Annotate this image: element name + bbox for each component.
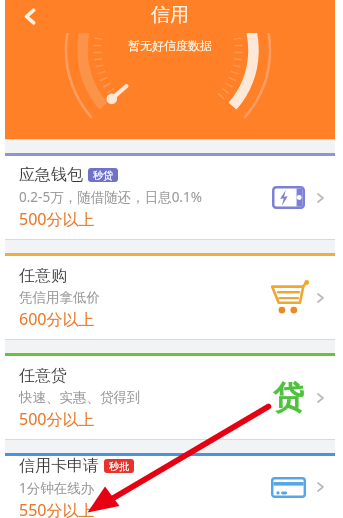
staticText: 500分以上 <box>19 408 95 430</box>
staticText: 秒批 <box>109 460 129 473</box>
staticText: 秒贷 <box>93 169 113 182</box>
staticText: 暂无好信度数据 <box>128 38 212 53</box>
staticText: 500分以上 <box>19 208 95 230</box>
staticText: 贷 <box>273 378 304 417</box>
button[interactable]: 任意贷 <box>5 356 335 439</box>
staticText: 信用 <box>151 3 189 27</box>
staticText: 应急钱包 <box>19 165 83 185</box>
button[interactable]: Back <box>13 0 45 32</box>
staticText: 0.2-5万，随借随还，日息0.1% <box>19 188 202 206</box>
staticText: 凭信用拿低价 <box>19 289 100 306</box>
staticText: 任意购 <box>19 266 67 286</box>
staticText: 快速、实惠、贷得到 <box>19 389 141 406</box>
staticText: 1分钟在线办 <box>19 479 95 497</box>
staticText: 信用卡申请 <box>19 456 99 476</box>
button[interactable]: 任意购 <box>5 256 335 339</box>
button[interactable]: 信用卡申请 <box>5 456 335 518</box>
staticText: 任意贷 <box>19 366 67 386</box>
staticText: 550分以上 <box>19 499 95 518</box>
staticText: 600分以上 <box>19 308 95 330</box>
button[interactable]: 应急钱包 <box>5 156 335 239</box>
